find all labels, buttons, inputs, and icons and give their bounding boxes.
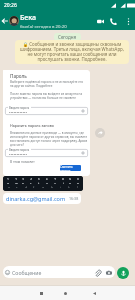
button[interactable]: Video call — [93, 14, 107, 28]
button[interactable]: Voice call — [106, 14, 120, 28]
button[interactable]: Home — [59, 287, 71, 299]
staticText: a — [8, 185, 10, 188]
button[interactable]: Back — [0, 16, 9, 25]
staticText: dinarka.cg@gmail.com — [6, 195, 66, 202]
button[interactable]: Attach file — [93, 268, 102, 277]
staticText: 20:26 — [4, 2, 17, 9]
button[interactable]: dinarka.cg@gmail.com — [6, 193, 79, 204]
button[interactable]: Сегодня — [58, 34, 77, 40]
staticText: y — [46, 181, 48, 184]
staticText: 5 — [38, 177, 40, 180]
staticText: 7 — [54, 177, 56, 180]
staticText: r — [30, 181, 32, 184]
staticText: 2 — [15, 177, 17, 180]
staticText: j — [60, 185, 61, 188]
staticText: h — [51, 185, 54, 188]
staticText: q — [7, 181, 10, 184]
staticText: 3 — [22, 177, 24, 180]
staticText: Пароль — [10, 73, 27, 79]
button[interactable]: Camera — [104, 268, 113, 277]
button[interactable]: Сообщение — [3, 266, 115, 278]
button[interactable]: Profile photo — [9, 16, 19, 26]
staticText: w — [15, 181, 18, 184]
button[interactable]: Back — [88, 287, 100, 299]
staticText: 4 — [30, 177, 32, 180]
staticText: e — [22, 181, 24, 184]
button[interactable]: Сменить пароль — [60, 165, 81, 171]
staticText: После замены пароля вы выйдете из аккаун… — [10, 92, 83, 100]
staticText: •••••••••••• — [9, 110, 28, 115]
button[interactable]: More options — [122, 15, 134, 27]
button[interactable]: Forward message — [95, 128, 105, 138]
button[interactable]: 1 — [3, 176, 83, 191]
button[interactable]: Record voice message — [117, 267, 129, 279]
staticText: 6 — [46, 177, 48, 180]
staticText: В этом поможет — [10, 160, 35, 164]
staticText: Бека — [20, 13, 37, 23]
staticText: s — [16, 185, 18, 188]
button[interactable]: Recent apps — [35, 287, 47, 299]
staticText: f — [33, 185, 35, 188]
staticText: 🔒 Сообщения и звонки защищены сквозным ш… — [18, 41, 126, 63]
staticText: i — [63, 181, 64, 184]
staticText: Сегодня — [58, 34, 77, 40]
staticText: k — [68, 185, 70, 188]
staticText: d — [25, 185, 28, 188]
staticText: o — [69, 181, 72, 184]
staticText: был(а) сегодня в 20:20 — [20, 23, 67, 29]
staticText: 0 — [77, 177, 79, 180]
staticText: 9 — [69, 177, 71, 180]
staticText: 1 — [7, 177, 9, 180]
staticText: l — [77, 185, 78, 188]
staticText: 8 — [62, 177, 64, 180]
staticText: Сменить пароль — [60, 165, 81, 171]
staticText: Введите пароль — [9, 106, 30, 110]
staticText: p — [77, 181, 80, 184]
staticText: Выберите надёжный пароль и не используйт… — [10, 80, 83, 88]
staticText: Внимательно данные при вводе — в аккаунт… — [10, 131, 88, 147]
staticText: Введите пароль — [9, 148, 30, 152]
staticText: 16:38 — [69, 196, 79, 201]
button[interactable]: 🔒 Сообщения и звонки защищены сквозным ш… — [15, 40, 129, 64]
staticText: t — [38, 181, 40, 184]
staticText: Наразить пароль заново — [10, 123, 54, 128]
staticText: g — [42, 185, 45, 188]
staticText: Сообщение — [12, 269, 42, 276]
staticText: u — [54, 181, 57, 184]
button[interactable]: Пароль — [3, 70, 90, 176]
staticText: •••••••••••• — [9, 152, 28, 157]
